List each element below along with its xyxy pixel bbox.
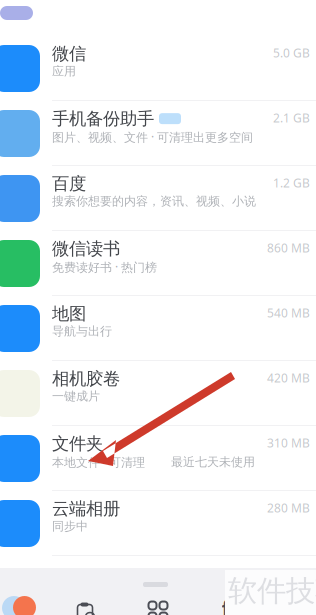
staticText: 云端相册 (52, 498, 120, 519)
button[interactable]: 云端相册 (0, 491, 316, 556)
staticText: 同步中 (52, 519, 88, 534)
staticText: 免费读好书 · 热门榜 (52, 259, 157, 275)
button[interactable]: 百度 (0, 166, 316, 231)
staticText: 图片、视频、文件 · 可清理出更多空间 (52, 129, 253, 145)
staticText: 微信读书 (52, 238, 120, 259)
button[interactable]: Assistant (210, 596, 230, 615)
staticText: 1.2 GB (273, 175, 310, 191)
staticText: 一键成片 (52, 389, 100, 404)
staticText: 相机胶卷 (52, 368, 120, 389)
button[interactable]: 微信读书 (0, 231, 316, 296)
staticText: 手机备份助手 (52, 108, 154, 129)
staticText: 最近七天未使用 (171, 455, 255, 469)
button[interactable]: 微信 (0, 36, 316, 101)
staticText: 导航与出行 (52, 324, 112, 339)
staticText: 2.1 GB (273, 110, 310, 126)
staticText: 860 MB (267, 240, 310, 256)
staticText: 540 MB (267, 305, 310, 321)
staticText: 文件夹 (52, 433, 103, 454)
button[interactable]: Clipboard (72, 597, 96, 615)
button[interactable]: 地图 (0, 296, 316, 361)
staticText: 应用 (52, 64, 76, 79)
staticText: f (221, 594, 230, 615)
button[interactable]: 文件夹 (0, 426, 316, 491)
staticText: 5.0 GB (273, 45, 310, 61)
button[interactable]: 手机备份助手 (0, 101, 316, 166)
staticText: 310 MB (267, 435, 310, 451)
staticText: 软件技巧 (228, 573, 316, 609)
button[interactable]: Apps (146, 598, 170, 615)
button[interactable]: 相机胶卷 (0, 361, 316, 426)
staticText: 搜索你想要的内容，资讯、视频、小说 (52, 194, 256, 209)
staticText: 420 MB (267, 370, 310, 386)
staticText: 微信 (52, 43, 86, 64)
staticText: 百度 (52, 173, 86, 194)
staticText: 280 MB (267, 500, 310, 516)
button[interactable]: Profile (2, 578, 42, 615)
staticText: 地图 (52, 303, 86, 324)
staticText: 本地文件 · 可清理 (52, 454, 145, 470)
